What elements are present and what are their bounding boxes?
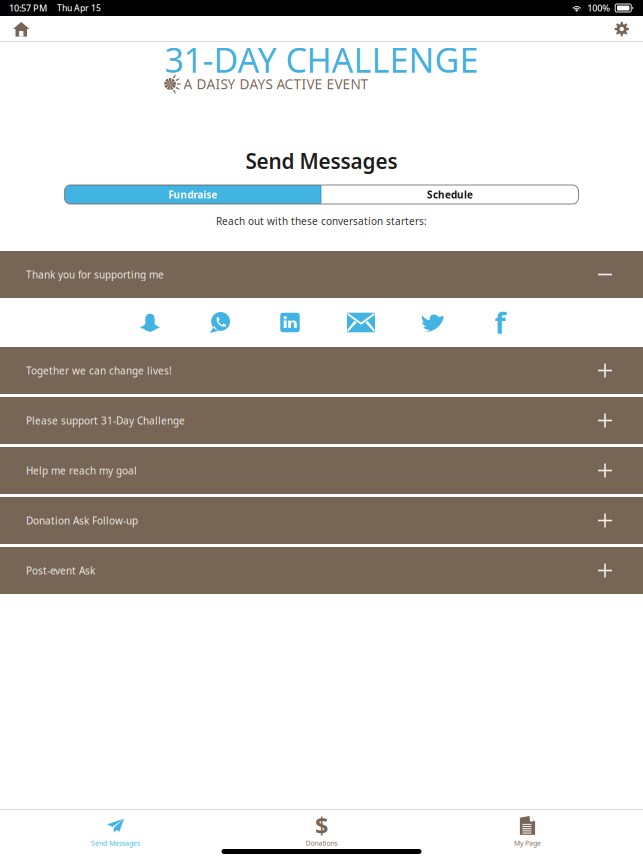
button[interactable]: Together we can change lives! [0,347,643,394]
button[interactable]: Post-event Ask [0,547,643,594]
staticText: Thank you for supporting me [26,268,164,281]
staticText: Thu Apr 15 [57,2,101,14]
staticText: A DAISY DAYS ACTIVE EVENT [183,75,368,93]
staticText: Together we can change lives! [26,364,172,377]
button[interactable]: Share on LinkedIn [255,298,325,347]
staticText: Fundraise [168,188,217,201]
staticText: Help me reach my goal [26,464,137,477]
button[interactable]: Send Messages [12,808,218,851]
staticText: Reach out with these conversation starte… [216,214,427,228]
button[interactable]: Schedule [321,185,578,204]
staticText: Send Messages [245,147,397,175]
staticText: 100% [587,2,610,14]
staticText: Post-event Ask [26,564,95,577]
staticText: My Page [514,838,541,848]
staticText: $ [315,809,328,841]
button[interactable]: Share by Email [325,298,397,347]
staticText: Please support 31-Day Challenge [26,414,185,427]
staticText: Schedule [427,188,473,201]
button[interactable]: Share on WhatsApp [185,298,255,347]
button[interactable]: Help me reach my goal [0,447,643,494]
staticText: f [494,303,505,342]
staticText: 10:57 PM [9,2,47,14]
staticText: Donation Ask Follow-up [26,514,138,527]
button[interactable]: Share on Snapchat [115,298,185,347]
button[interactable]: Home [0,16,42,42]
button[interactable]: Donation Ask Follow-up [0,497,643,544]
staticText: Send Messages [91,838,140,848]
button[interactable]: Please support 31-Day Challenge [0,397,643,444]
staticText: 31-DAY CHALLENGE [164,36,478,83]
button[interactable]: My Page [424,808,630,851]
button[interactable]: Settings [600,16,643,42]
button[interactable]: $ [218,808,424,851]
button[interactable]: Share on Twitter [397,298,468,347]
button[interactable]: Share on Facebook [468,298,532,347]
staticText: Donations [305,838,337,848]
button[interactable]: Thank you for supporting me [0,251,643,298]
button[interactable]: Fundraise [64,185,321,204]
